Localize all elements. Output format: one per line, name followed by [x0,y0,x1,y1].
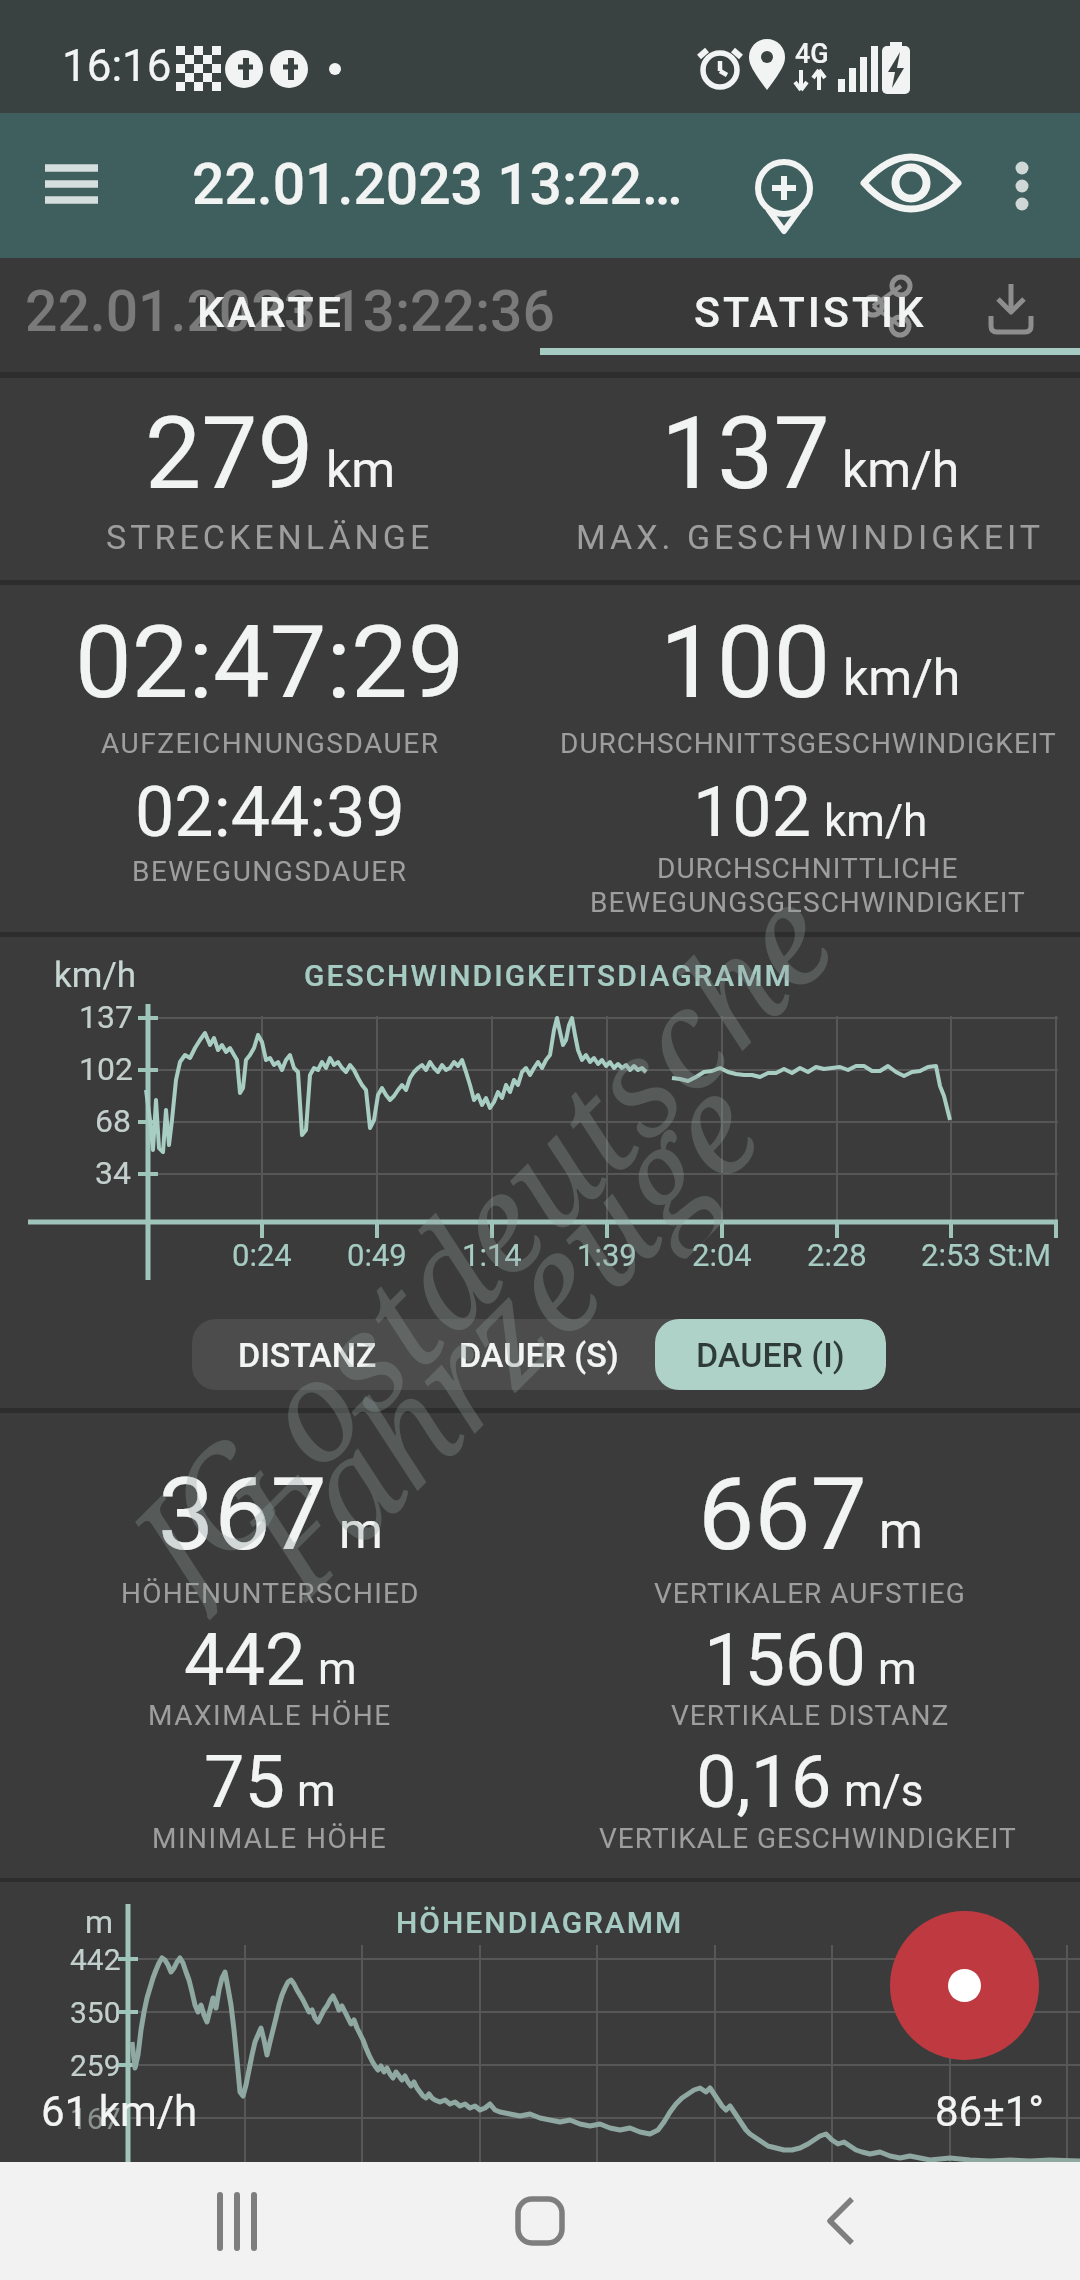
staticText: BEWEGUNGSDAUER [132,855,408,888]
staticText: 4G [795,38,829,70]
staticText: 167 [70,2101,121,2136]
staticText: GESCHWINDIGKEITSDIAGRAMM [304,958,793,993]
staticText: 22.01.2023 13:22:36 [25,278,555,345]
button[interactable] [30,158,114,218]
staticText: MINIMALE HÖHE [152,1822,388,1855]
staticText: St:M [988,1237,1052,1273]
staticText: 1:39 [577,1237,637,1273]
staticText: m [879,1502,923,1561]
staticText: VERTIKALE DISTANZ [671,1699,950,1732]
staticText: 279 [145,395,314,512]
staticText: 137 [79,998,133,1036]
staticText: 34 [95,1154,131,1192]
staticText: 1:14 [462,1237,522,1273]
staticText: 61 km/h [41,2087,198,2136]
staticText: 102 [693,771,812,853]
staticText: 2:53 [921,1237,981,1273]
button[interactable] [180,2172,300,2270]
staticText: Fahrzeuge [204,1038,787,1621]
staticText: 367 [158,1456,327,1573]
staticText: STRECKENLÄNGE [106,517,434,557]
staticText: m [85,1903,114,1941]
staticText: 2:04 [692,1237,752,1273]
staticText: 22.01.2023 13:22… [192,151,683,218]
staticText: VERTIKALE GESCHWINDIGKEIT [599,1822,1017,1855]
staticText: HÖHENDIAGRAMM [396,1905,684,1940]
staticText: m [318,1643,357,1695]
staticText: 100 [660,603,831,721]
staticText: m [297,1765,336,1817]
staticText: STATISTIK [694,287,927,337]
button[interactable]: DAUER (I) [655,1319,886,1390]
staticText: m/s [844,1765,924,1817]
staticText: HÖHENUNTERSCHIED [121,1577,420,1610]
staticText: m [878,1643,917,1695]
staticText: 137 [661,395,830,512]
staticText: 350 [70,1995,121,2030]
staticText: 02:44:39 [135,771,405,853]
staticText: 1560 [704,1618,866,1702]
button[interactable] [890,1911,1039,2060]
staticText: VERTIKALER AUFSTIEG [654,1577,966,1610]
staticText: 75 [204,1740,285,1824]
staticText: MAXIMALE HÖHE [148,1699,392,1732]
staticText: 86±1° [935,2087,1044,2136]
staticText: km/h [824,795,928,847]
button[interactable]: DISTANZ [192,1319,423,1390]
staticText: MAX. GESCHWINDIGKEIT [576,517,1045,557]
staticText: km/h [843,649,961,708]
staticText: km/h [842,441,960,500]
staticText: JG ostdeutsche [90,849,861,1620]
staticText: 0,16 [696,1740,832,1824]
staticText: 102 [79,1050,133,1088]
staticText: DAUER (I) [696,1335,845,1375]
button[interactable]: KARTE [0,258,540,366]
staticText: 667 [698,1456,867,1573]
staticText: m [339,1502,383,1561]
button[interactable] [780,2172,900,2270]
staticText: 02:47:29 [75,603,465,721]
staticText: 259 [70,2048,121,2083]
staticText: DAUER (S) [459,1335,619,1375]
staticText: km/h [54,955,137,996]
staticText: 16:16 [62,40,172,92]
staticText: 0:49 [347,1237,407,1273]
staticText: AUFZEICHNUNGSDAUER [101,727,440,760]
staticText: 68 [95,1102,131,1140]
staticText: 442 [184,1618,306,1702]
staticText: DURCHSCHNITTSGESCHWINDIGKEIT [560,727,1057,760]
staticText: KARTE [197,287,344,337]
staticText: DISTANZ [238,1335,377,1375]
button[interactable] [732,131,836,241]
staticText: km [326,441,396,500]
button[interactable] [480,2172,600,2270]
staticText: 0:24 [232,1237,292,1273]
button[interactable]: DAUER (S) [423,1319,655,1390]
button[interactable] [858,138,964,234]
button[interactable] [990,138,1054,234]
staticText: BEWEGUNGSGESCHWINDIGKEIT [590,886,1026,919]
button[interactable]: STATISTIK [540,258,1080,366]
staticText: 442 [70,1942,121,1977]
staticText: DURCHSCHNITTLICHE [657,852,959,885]
staticText: 2:28 [807,1237,867,1273]
